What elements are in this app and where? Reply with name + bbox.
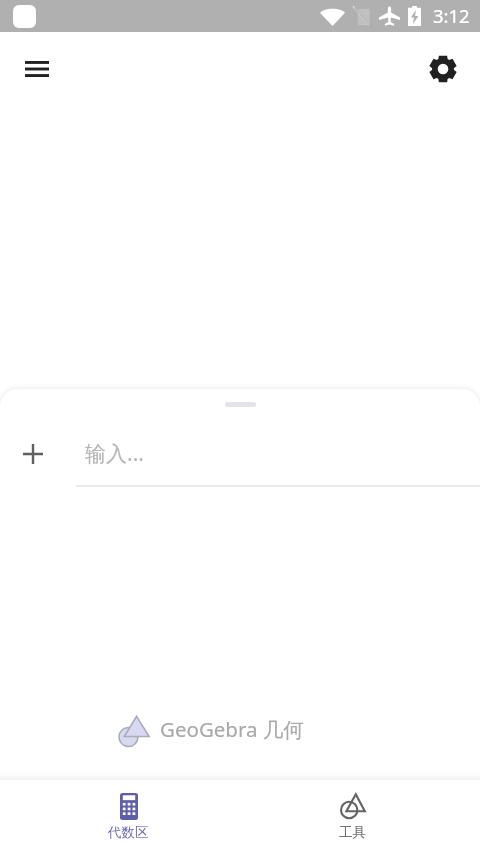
staticText: 代数区 xyxy=(108,824,149,841)
button[interactable]: 工具 xyxy=(240,779,464,853)
staticText: 工具 xyxy=(339,824,366,841)
staticText: GeoGebra 几何 xyxy=(160,715,304,743)
button[interactable]: 代数区 xyxy=(16,779,240,853)
staticText: 输入... xyxy=(85,439,144,468)
staticText: 3:12 xyxy=(433,3,470,28)
button[interactable]: Settings xyxy=(419,45,467,93)
button[interactable]: Menu xyxy=(13,45,61,93)
button[interactable]: Add input xyxy=(9,430,57,478)
